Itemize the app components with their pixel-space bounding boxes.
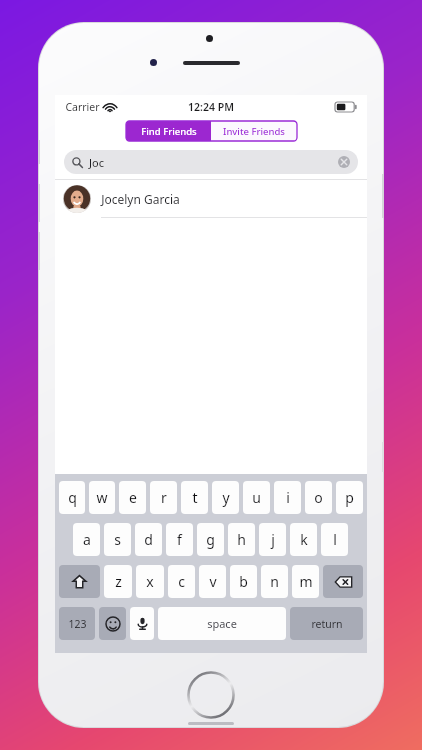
- button[interactable]: h: [228, 523, 255, 556]
- button[interactable]: space: [158, 607, 286, 640]
- staticText: p: [345, 488, 354, 507]
- button[interactable]: v: [199, 565, 226, 598]
- button[interactable]: Clear search: [338, 156, 350, 168]
- staticText: h: [237, 530, 246, 549]
- staticText: u: [252, 488, 261, 507]
- staticText: Jocelyn Garcia: [101, 191, 180, 207]
- staticText: t: [192, 488, 198, 507]
- button[interactable]: w: [89, 481, 115, 514]
- button[interactable]: p: [336, 481, 363, 514]
- staticText: z: [115, 572, 122, 591]
- button[interactable]: x: [136, 565, 164, 598]
- staticText: o: [314, 488, 323, 507]
- button[interactable]: Invite Friends: [211, 121, 297, 141]
- staticText: f: [177, 530, 182, 549]
- staticText: Find Friends: [141, 125, 197, 138]
- button[interactable]: d: [135, 523, 162, 556]
- staticText: m: [299, 572, 313, 591]
- staticText: space: [207, 616, 237, 631]
- button[interactable]: y: [212, 481, 239, 514]
- button[interactable]: Emoji keyboard: [99, 607, 126, 640]
- staticText: Joc: [89, 155, 104, 170]
- button[interactable]: k: [290, 523, 317, 556]
- button[interactable]: Joc: [64, 150, 358, 174]
- button[interactable]: g: [197, 523, 224, 556]
- staticText: k: [300, 530, 308, 549]
- button[interactable]: Find Friends: [126, 121, 211, 141]
- button[interactable]: i: [274, 481, 301, 514]
- button[interactable]: Jocelyn Garcia: [55, 180, 367, 217]
- button[interactable]: z: [104, 565, 132, 598]
- button[interactable]: Dictation: [130, 607, 154, 640]
- button[interactable]: l: [321, 523, 348, 556]
- button[interactable]: m: [292, 565, 319, 598]
- staticText: l: [333, 530, 337, 549]
- staticText: n: [270, 572, 279, 591]
- staticText: return: [311, 617, 343, 631]
- button[interactable]: c: [168, 565, 195, 598]
- button[interactable]: b: [230, 565, 257, 598]
- button[interactable]: o: [305, 481, 332, 514]
- button[interactable]: t: [181, 481, 208, 514]
- staticText: s: [114, 530, 121, 549]
- button[interactable]: Shift: [59, 565, 100, 598]
- staticText: y: [222, 488, 230, 507]
- staticText: Invite Friends: [223, 125, 285, 138]
- staticText: 12:24 PM: [188, 100, 234, 114]
- button[interactable]: s: [104, 523, 131, 556]
- button[interactable]: Backspace: [323, 565, 363, 598]
- button[interactable]: 123: [59, 607, 95, 640]
- staticText: g: [206, 530, 215, 549]
- button[interactable]: n: [261, 565, 288, 598]
- staticText: a: [83, 530, 91, 549]
- button[interactable]: j: [259, 523, 286, 556]
- staticText: v: [209, 572, 217, 591]
- staticText: w: [96, 488, 108, 507]
- staticText: Carrier: [65, 100, 100, 114]
- staticText: d: [144, 530, 153, 549]
- button[interactable]: return: [290, 607, 363, 640]
- staticText: r: [161, 488, 167, 507]
- staticText: x: [146, 572, 154, 591]
- button[interactable]: f: [166, 523, 193, 556]
- staticText: b: [239, 572, 248, 591]
- staticText: 123: [68, 617, 87, 631]
- staticText: e: [129, 488, 137, 507]
- button[interactable]: e: [119, 481, 146, 514]
- button[interactable]: a: [73, 523, 100, 556]
- staticText: i: [286, 488, 290, 507]
- staticText: c: [178, 572, 185, 591]
- button[interactable]: q: [59, 481, 85, 514]
- staticText: q: [68, 488, 77, 507]
- button[interactable]: r: [150, 481, 177, 514]
- staticText: j: [271, 530, 275, 549]
- button[interactable]: u: [243, 481, 270, 514]
